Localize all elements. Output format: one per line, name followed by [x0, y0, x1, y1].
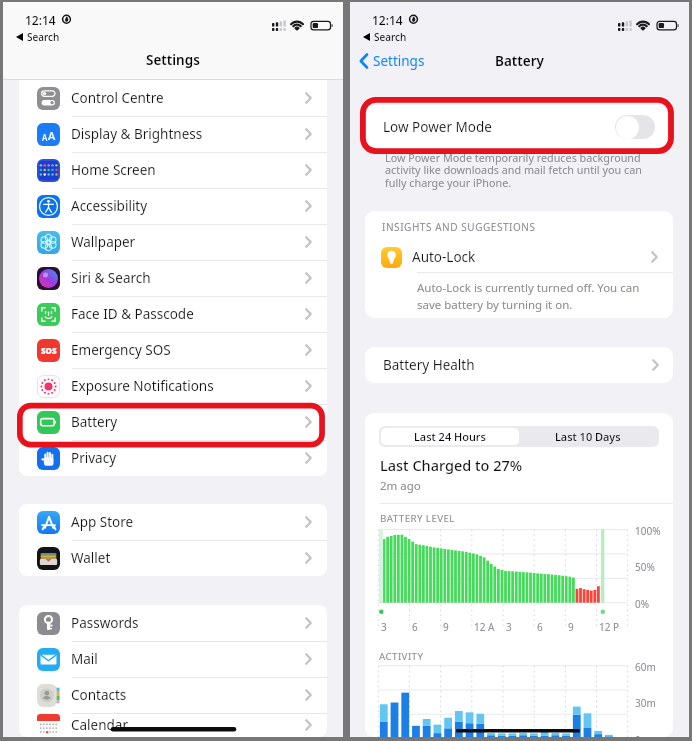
staticText: Battery	[495, 52, 544, 70]
button[interactable]: Control Centre	[19, 80, 327, 116]
button[interactable]: Settings	[355, 48, 429, 74]
staticText: Control Centre	[71, 89, 164, 107]
staticText: INSIGHTS AND SUGGESTIONS	[382, 220, 536, 234]
staticText: Contacts	[71, 686, 127, 704]
staticText: 0%	[635, 597, 650, 611]
staticText: Battery	[71, 413, 118, 431]
staticText: BATTERY LEVEL	[380, 512, 455, 525]
staticText: Accessibility	[71, 197, 148, 215]
staticText: 12 P	[599, 620, 620, 634]
staticText: 12 A	[474, 620, 495, 634]
staticText: Auto-Lock is currently turned off. You c…	[417, 280, 640, 312]
staticText: 9	[568, 620, 574, 634]
button[interactable]: SOS	[19, 332, 327, 368]
staticText: 12:14	[25, 12, 56, 28]
button[interactable]: Last 10 Days	[519, 428, 657, 445]
button[interactable]: Low Power Mode toggle	[615, 115, 655, 139]
button[interactable]: Face ID & Passcode	[19, 296, 327, 332]
staticText: 50%	[635, 560, 655, 574]
button[interactable]: Wallpaper	[19, 224, 327, 260]
staticText: 0m	[635, 733, 651, 737]
button[interactable]: App Store	[19, 504, 327, 540]
staticText: 3	[506, 620, 512, 634]
staticText: ACTIVITY	[379, 650, 424, 663]
staticText: Calendar	[71, 716, 128, 734]
button[interactable]: Home Screen	[19, 152, 327, 188]
button[interactable]: Calendar	[19, 713, 327, 737]
button[interactable]: Exposure Notifications	[19, 368, 327, 404]
button[interactable]: Siri & Search	[19, 260, 327, 296]
button[interactable]: Passwords	[19, 605, 327, 641]
staticText: Display & Brightness	[71, 125, 203, 143]
staticText: A	[48, 128, 56, 143]
staticText: Last 24 Hours	[414, 429, 486, 444]
staticText: 3	[381, 620, 387, 634]
staticText: 9	[443, 620, 449, 634]
staticText: Search	[27, 30, 60, 44]
button[interactable]: Mail	[19, 641, 327, 677]
button[interactable]: Privacy	[19, 440, 327, 476]
staticText: Wallpaper	[71, 233, 136, 251]
staticText: Passwords	[71, 614, 139, 632]
button[interactable]: Wallet	[19, 540, 327, 576]
button[interactable]: Last 24 Hours	[381, 428, 519, 445]
staticText: Low Power Mode	[383, 118, 492, 136]
staticText: 30m	[635, 696, 656, 710]
staticText: App Store	[71, 513, 134, 531]
button[interactable]: Auto-Lock	[365, 241, 673, 273]
button[interactable]: Battery Health	[365, 347, 673, 383]
staticText: 2m ago	[380, 478, 421, 494]
button[interactable]: Battery	[19, 404, 327, 440]
staticText: Wallet	[71, 549, 111, 567]
staticText: Face ID & Passcode	[71, 305, 194, 323]
staticText: Emergency SOS	[71, 341, 171, 359]
staticText: 6	[412, 620, 418, 634]
staticText: Mail	[71, 650, 98, 668]
button[interactable]: Low Power Mode	[365, 105, 673, 148]
staticText: 12:14	[372, 12, 403, 28]
staticText: Low Power Mode temporarily reduces backg…	[385, 150, 642, 190]
staticText: Auto-Lock	[412, 248, 476, 266]
staticText: Privacy	[71, 449, 117, 467]
staticText: Home Screen	[71, 161, 156, 179]
staticText: A	[42, 132, 48, 143]
button[interactable]: A	[19, 116, 327, 152]
staticText: Battery Health	[383, 356, 475, 374]
button[interactable]: Contacts	[19, 677, 327, 713]
staticText: Settings	[373, 52, 425, 70]
staticText: 100%	[635, 524, 661, 538]
staticText: Last Charged to 27%	[380, 455, 523, 475]
staticText: Siri & Search	[71, 269, 151, 287]
staticText: 6	[537, 620, 543, 634]
staticText: Last 10 Days	[555, 429, 621, 444]
staticText: Exposure Notifications	[71, 377, 214, 395]
staticText: 60m	[635, 660, 656, 674]
staticText: Settings	[146, 51, 200, 69]
staticText: Search	[374, 30, 407, 44]
staticText: SOS	[41, 345, 57, 356]
button[interactable]: Accessibility	[19, 188, 327, 224]
